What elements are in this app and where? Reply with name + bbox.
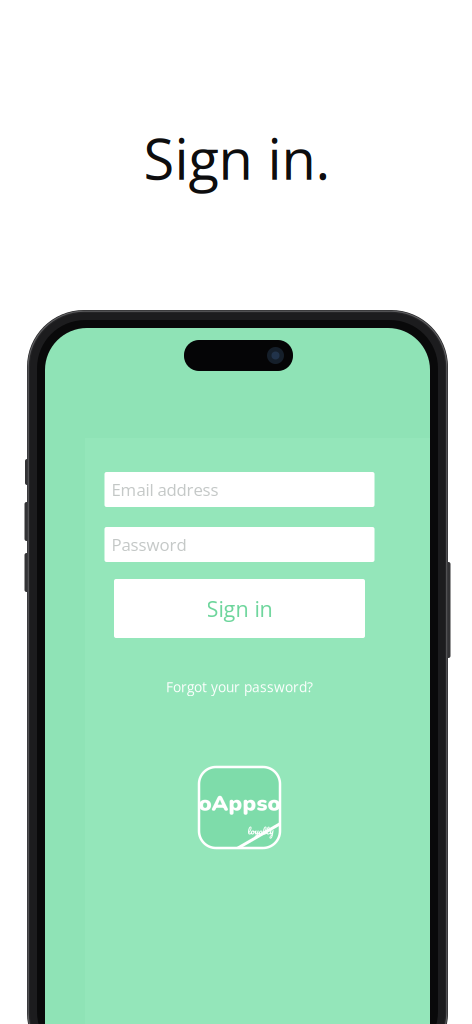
staticText: Password: [111, 533, 186, 556]
button[interactable]: Forgot your password?: [119, 678, 359, 696]
button[interactable]: Email address: [104, 472, 374, 507]
button[interactable]: Password: [104, 527, 374, 562]
button[interactable]: Sign in: [114, 579, 365, 638]
staticText: Email address: [111, 478, 218, 501]
staticText: Sign in: [206, 594, 272, 623]
staticText: loyalty: [247, 822, 273, 839]
staticText: Sign in.: [143, 120, 330, 196]
staticText: oAppso: [198, 788, 280, 818]
staticText: Forgot your password?: [166, 678, 313, 696]
